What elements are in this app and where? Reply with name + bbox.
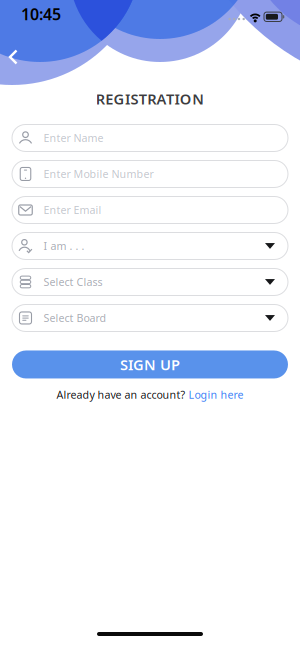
- button[interactable]: Enter Email: [12, 196, 288, 223]
- staticText: Select Class: [43, 275, 102, 289]
- staticText: 10:45: [21, 3, 61, 25]
- staticText: Enter Name: [43, 131, 103, 145]
- button[interactable]: Back: [4, 47, 21, 67]
- staticText: Login here: [188, 387, 243, 402]
- staticText: REGISTRATION: [96, 89, 204, 108]
- staticText: Enter Mobile Number: [43, 167, 153, 181]
- button[interactable]: I am . . .: [12, 232, 288, 259]
- button[interactable]: SIGN UP: [12, 350, 288, 378]
- staticText: SIGN UP: [120, 355, 180, 374]
- staticText: I am . . .: [43, 239, 84, 253]
- staticText: Already have an account?: [56, 387, 185, 402]
- button[interactable]: Select Board: [12, 304, 288, 331]
- button[interactable]: Login here: [188, 387, 243, 402]
- button[interactable]: Enter Name: [12, 124, 288, 151]
- staticText: Enter Email: [43, 203, 101, 217]
- staticText: Select Board: [43, 311, 106, 325]
- button[interactable]: Enter Mobile Number: [12, 160, 288, 187]
- button[interactable]: Select Class: [12, 268, 288, 295]
